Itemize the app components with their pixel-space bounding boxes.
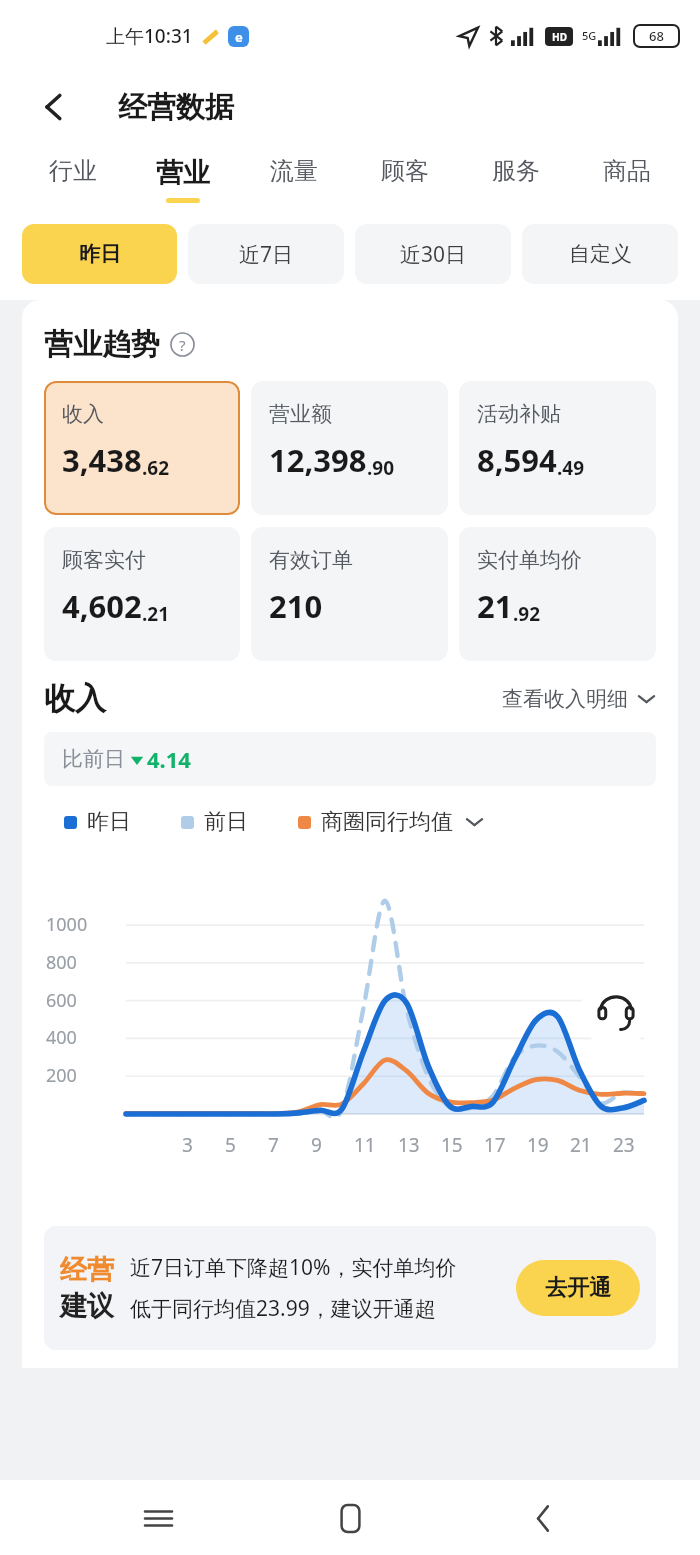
staticText: 7: [268, 1132, 279, 1158]
button[interactable]: 营业额: [251, 381, 448, 515]
button[interactable]: 主页: [315, 1483, 385, 1553]
button[interactable]: 商品: [571, 142, 682, 216]
staticText: 实付单均价: [477, 547, 582, 573]
button[interactable]: 有效订单: [251, 527, 448, 661]
staticText: 流量: [270, 156, 318, 186]
staticText: .92: [513, 601, 541, 627]
button[interactable]: 经营: [44, 1226, 656, 1350]
staticText: 3,438: [62, 439, 142, 481]
staticText: 收入: [62, 401, 104, 427]
staticText: 3: [182, 1132, 193, 1158]
staticText: 查看收入明细: [502, 686, 628, 712]
staticText: 经营: [60, 1253, 114, 1287]
staticText: 200: [46, 1063, 77, 1088]
button[interactable]: 前日: [181, 808, 248, 836]
staticText: .90: [367, 455, 395, 481]
button[interactable]: 近30日: [355, 224, 511, 284]
button[interactable]: 流量: [238, 142, 349, 216]
staticText: 近30日: [400, 240, 467, 269]
staticText: 近7日订单下降超10%，实付单均价: [130, 1253, 457, 1282]
staticText: 5G: [582, 28, 597, 43]
staticText: 建议: [60, 1289, 114, 1323]
button[interactable]: 实付单均价: [459, 527, 656, 661]
staticText: 收入: [44, 679, 106, 718]
staticText: 68: [649, 27, 664, 45]
button[interactable]: 最近任务: [123, 1483, 193, 1553]
button[interactable]: 返回: [508, 1483, 578, 1553]
staticText: 去开通: [545, 1274, 611, 1302]
staticText: 顾客实付: [62, 547, 146, 573]
staticText: e: [235, 28, 243, 46]
button[interactable]: 顾客实付: [44, 527, 240, 661]
staticText: 低于同行均值23.99，建议开通超: [130, 1294, 436, 1323]
staticText: 营业趋势: [44, 326, 160, 363]
button[interactable]: 商圈同行均值: [298, 808, 453, 836]
staticText: 行业: [49, 156, 97, 186]
staticText: .21: [142, 601, 170, 627]
staticText: 17: [484, 1132, 506, 1158]
staticText: 比前日: [62, 746, 125, 772]
button[interactable]: 昨日: [22, 224, 177, 284]
staticText: 昨日: [87, 808, 131, 836]
staticText: .62: [142, 455, 170, 481]
button[interactable]: 活动补贴: [459, 381, 656, 515]
staticText: 11: [354, 1132, 376, 1158]
staticText: 210: [269, 585, 323, 627]
staticText: 自定义: [569, 241, 632, 267]
staticText: 4.14: [147, 744, 191, 774]
button[interactable]: 查看收入明细: [502, 686, 656, 712]
staticText: 商品: [603, 156, 651, 186]
staticText: 23: [613, 1132, 635, 1158]
button[interactable]: 收入: [44, 381, 240, 515]
staticText: HD: [552, 30, 567, 44]
staticText: 400: [46, 1025, 77, 1050]
staticText: 5: [225, 1132, 236, 1158]
staticText: 有效订单: [269, 547, 353, 573]
button[interactable]: 在线客服: [580, 976, 652, 1048]
staticText: 1000: [46, 912, 88, 937]
button[interactable]: 去开通: [516, 1260, 640, 1316]
button[interactable]: 近7日: [188, 224, 344, 284]
button[interactable]: 昨日: [64, 808, 131, 836]
staticText: 活动补贴: [477, 401, 561, 427]
button[interactable]: 说明: [169, 331, 196, 358]
button[interactable]: 顾客: [349, 142, 460, 216]
staticText: 顾客: [381, 156, 429, 186]
staticText: 21: [477, 585, 513, 627]
button[interactable]: 自定义: [522, 224, 678, 284]
staticText: 9: [311, 1132, 322, 1158]
button[interactable]: 展开图例: [465, 816, 484, 828]
staticText: 近7日: [239, 240, 294, 269]
staticText: 前日: [204, 808, 248, 836]
staticText: 21: [570, 1132, 592, 1158]
button[interactable]: 服务: [460, 142, 571, 216]
staticText: 13: [398, 1132, 420, 1158]
button[interactable]: 返回: [28, 81, 80, 133]
button[interactable]: 营业: [128, 142, 238, 216]
staticText: 服务: [492, 156, 540, 186]
staticText: 800: [46, 950, 77, 975]
staticText: 营业: [156, 156, 210, 190]
staticText: 商圈同行均值: [321, 808, 453, 836]
staticText: 经营数据: [118, 89, 234, 126]
staticText: 19: [527, 1132, 549, 1158]
staticText: 4,602: [62, 585, 142, 627]
staticText: 12,398: [269, 439, 367, 481]
staticText: ?: [179, 335, 186, 355]
staticText: 昨日: [79, 241, 121, 267]
staticText: 8,594: [477, 439, 557, 481]
staticText: .49: [557, 455, 585, 481]
staticText: 600: [46, 988, 77, 1013]
staticText: 营业额: [269, 401, 332, 427]
staticText: 上午10:31: [106, 23, 193, 49]
button[interactable]: 行业: [18, 142, 128, 216]
staticText: 15: [441, 1132, 463, 1158]
